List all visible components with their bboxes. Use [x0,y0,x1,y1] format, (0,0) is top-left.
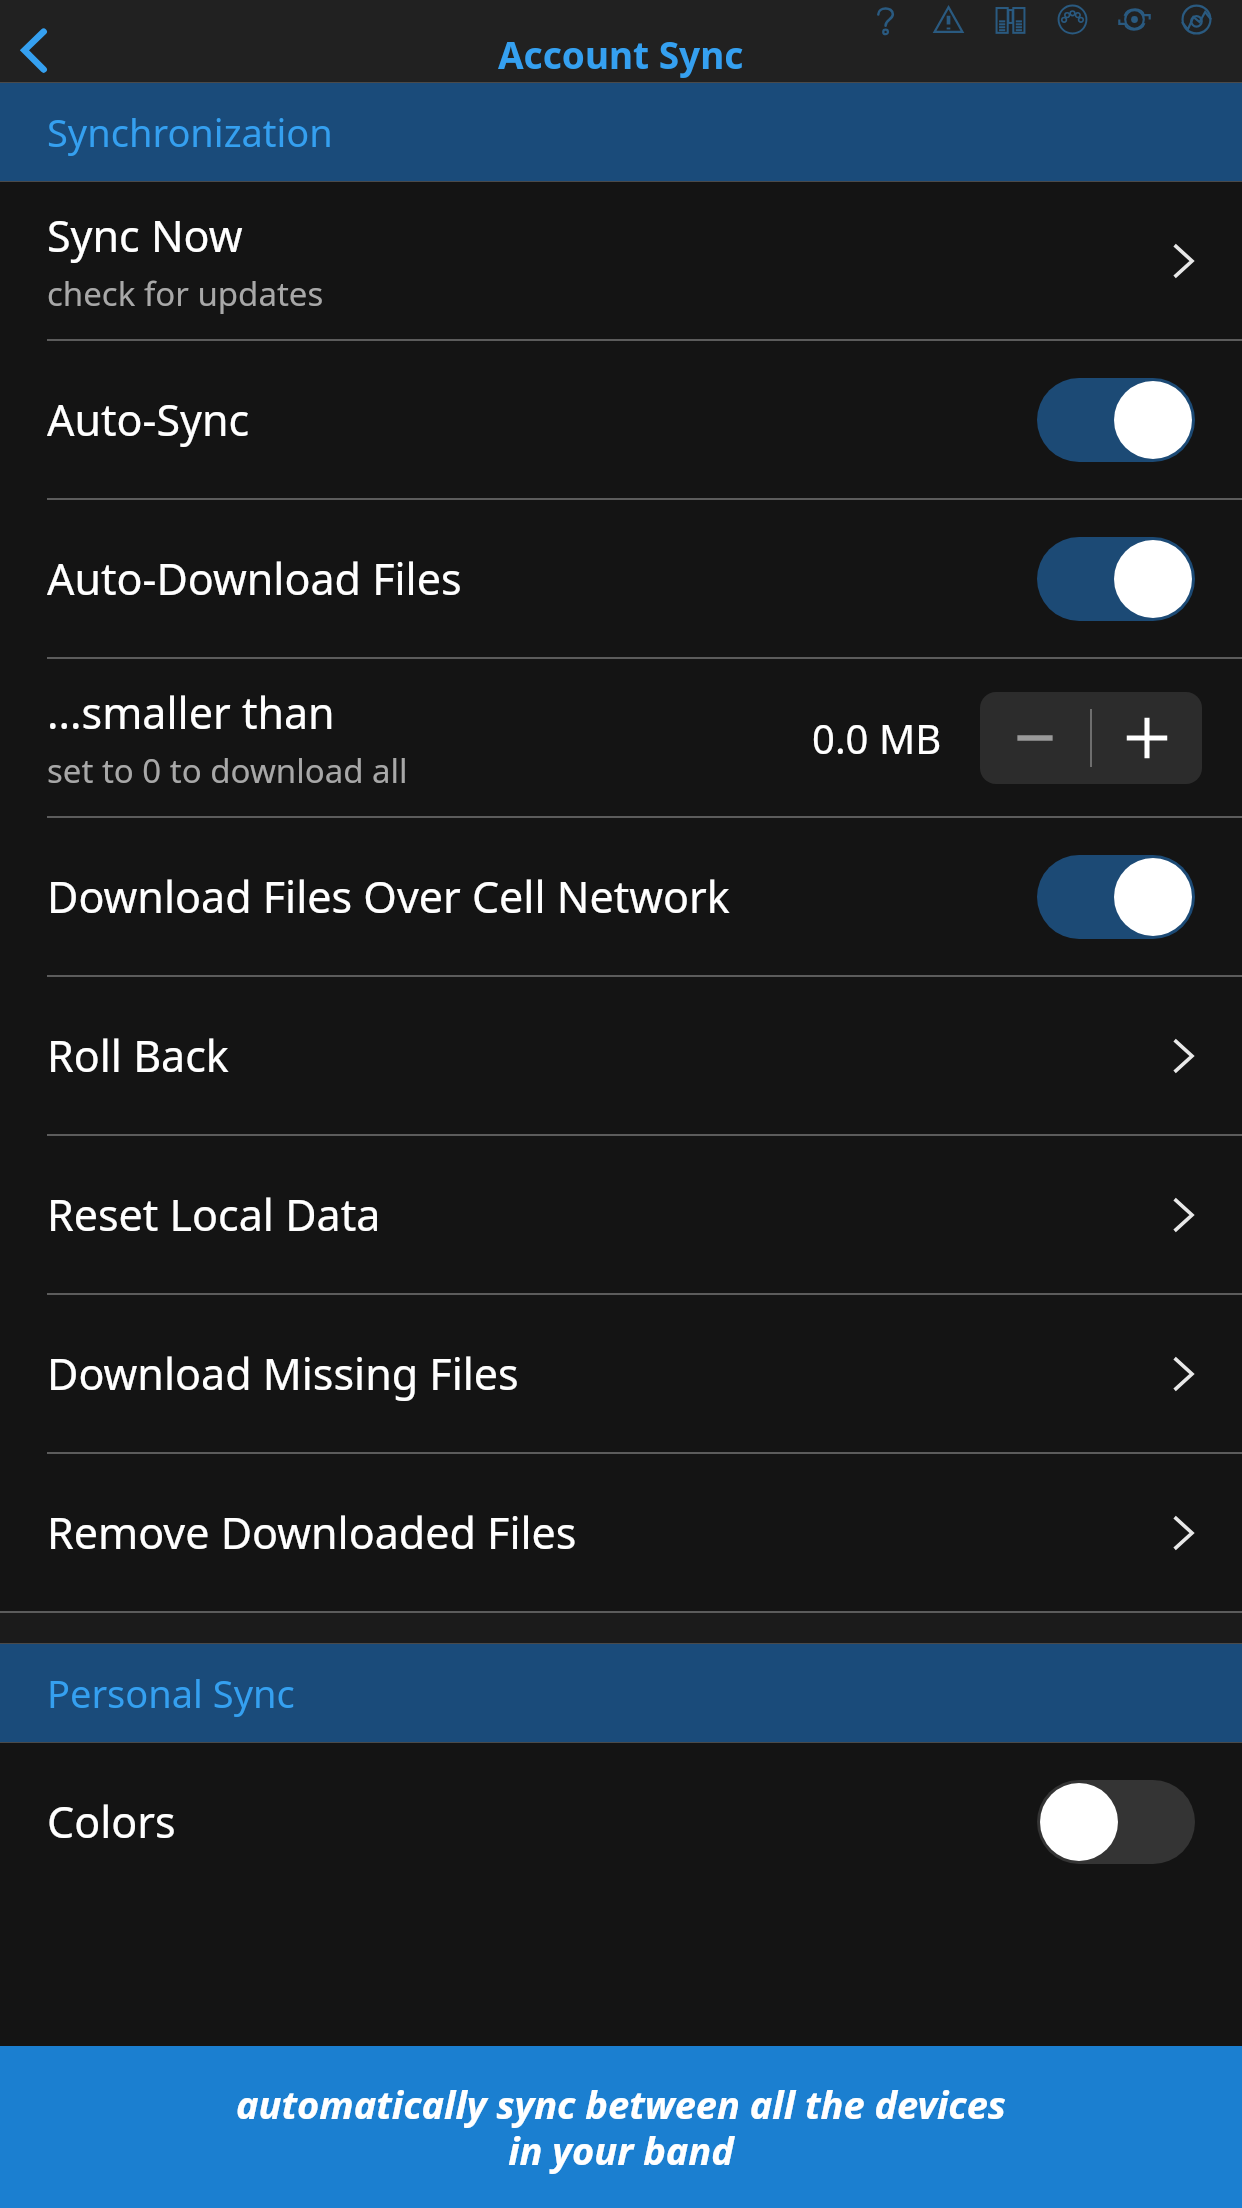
button[interactable]: Band [1119,4,1150,35]
button[interactable]: Back [4,18,66,80]
button[interactable]: Download Missing Files [0,1295,1242,1452]
staticText: Synchronization [47,106,333,158]
staticText: set to 0 to download all [47,748,408,793]
staticText: check for updates [47,271,324,316]
button[interactable]: Colors off [1037,1780,1195,1864]
button[interactable]: Sync Now [0,182,1242,339]
button[interactable]: Remove Downloaded Files [0,1454,1242,1611]
button[interactable]: Roll Back [0,977,1242,1134]
staticText: Download Missing Files [47,1344,519,1403]
button[interactable]: Auto-Sync on [1037,378,1195,462]
button[interactable]: Colors [0,1743,1242,1900]
button[interactable]: Auto-Download Files on [1037,537,1195,621]
button[interactable]: Warnings [933,4,964,35]
button[interactable]: Tuner [1057,4,1088,35]
staticText: Reset Local Data [47,1185,381,1244]
staticText: ...smaller than [47,683,335,742]
staticText: Remove Downloaded Files [47,1503,577,1562]
staticText: Auto-Sync [47,390,250,449]
staticText: Colors [47,1792,176,1851]
button[interactable]: Auto-Sync [0,341,1242,498]
button[interactable]: Download Files Over Cell Network [0,818,1242,975]
button[interactable]: Decrease [980,692,1090,784]
button[interactable]: Reset Local Data [0,1136,1242,1293]
staticText: Account Sync [498,29,744,79]
button[interactable]: automatically sync between all the devic… [0,2046,1242,2208]
staticText: 0.0 MB [812,711,942,765]
button[interactable]: Increase [1092,692,1202,784]
button[interactable]: Auto-Download Files [0,500,1242,657]
button[interactable]: Help [871,4,902,35]
button[interactable]: Waveform [1181,4,1212,35]
button[interactable]: Download Files Over Cell Network on [1037,855,1195,939]
staticText: Auto-Download Files [47,549,462,608]
staticText: Personal Sync [47,1667,295,1719]
staticText: Download Files Over Cell Network [47,867,730,926]
staticText: Roll Back [47,1026,229,1085]
staticText: automatically sync between all the devic… [236,2078,1006,2176]
button[interactable]: Library [995,4,1026,35]
staticText: Sync Now [47,206,243,265]
